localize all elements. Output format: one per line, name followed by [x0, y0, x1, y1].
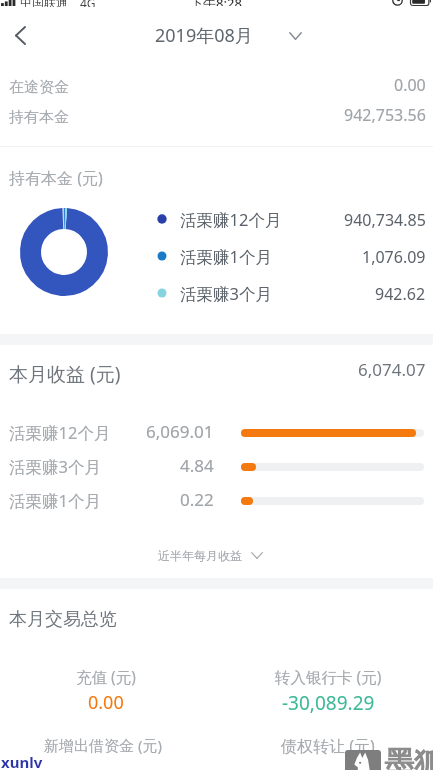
staticText: 债权转让 (元): [281, 735, 375, 757]
staticText: 6,074.07: [358, 358, 426, 381]
staticText: 近半年每月收益: [158, 548, 242, 563]
staticText: 0.00: [394, 74, 426, 96]
staticText: 0.22: [180, 488, 214, 511]
staticText: 下午8:28: [190, 0, 242, 6]
staticText: 2019年08月: [155, 23, 253, 48]
button[interactable]: 近半年每月收益: [154, 544, 267, 567]
staticText: 充值 (元): [76, 666, 136, 687]
staticText: 0.00: [88, 690, 124, 715]
staticText: 活栗赚12个月: [180, 208, 282, 231]
staticText: 在途资金: [9, 78, 69, 97]
button[interactable]: 债权转让 (元): [218, 735, 433, 759]
staticText: xunlv: [1, 752, 43, 770]
staticText: 活栗赚12个月: [9, 421, 111, 444]
staticText: 6,069.01: [146, 420, 214, 443]
staticText: 墨狐: [384, 744, 433, 770]
staticText: 940,734.85: [344, 209, 426, 231]
staticText: 活栗赚1个月: [9, 489, 101, 512]
button[interactable]: 转入银行卡 (元): [218, 666, 433, 716]
button[interactable]: Back: [2, 17, 38, 53]
staticText: 转入银行卡 (元): [275, 666, 382, 687]
staticText: 本月交易总览: [9, 608, 117, 631]
button[interactable]: 充值 (元): [0, 666, 216, 716]
staticText: 活栗赚1个月: [180, 245, 272, 268]
staticText: 4.84: [180, 454, 214, 477]
staticText: 中国联通: [20, 0, 68, 7]
button[interactable]: 新增出借资金 (元): [0, 735, 213, 759]
staticText: 942.62: [375, 283, 426, 305]
staticText: 活栗赚3个月: [180, 282, 272, 305]
staticText: 1,076.09: [362, 246, 426, 268]
staticText: 持有本金: [9, 108, 69, 127]
staticText: 4G: [80, 0, 96, 7]
staticText: 新增出借资金 (元): [44, 735, 162, 755]
staticText: 活栗赚3个月: [9, 455, 101, 478]
staticText: -30,089.29: [282, 690, 375, 716]
button[interactable]: 2019年08月: [155, 23, 302, 48]
staticText: 942,753.56: [344, 104, 426, 126]
staticText: 本月收益 (元): [9, 361, 121, 387]
staticText: 持有本金 (元): [9, 167, 103, 189]
